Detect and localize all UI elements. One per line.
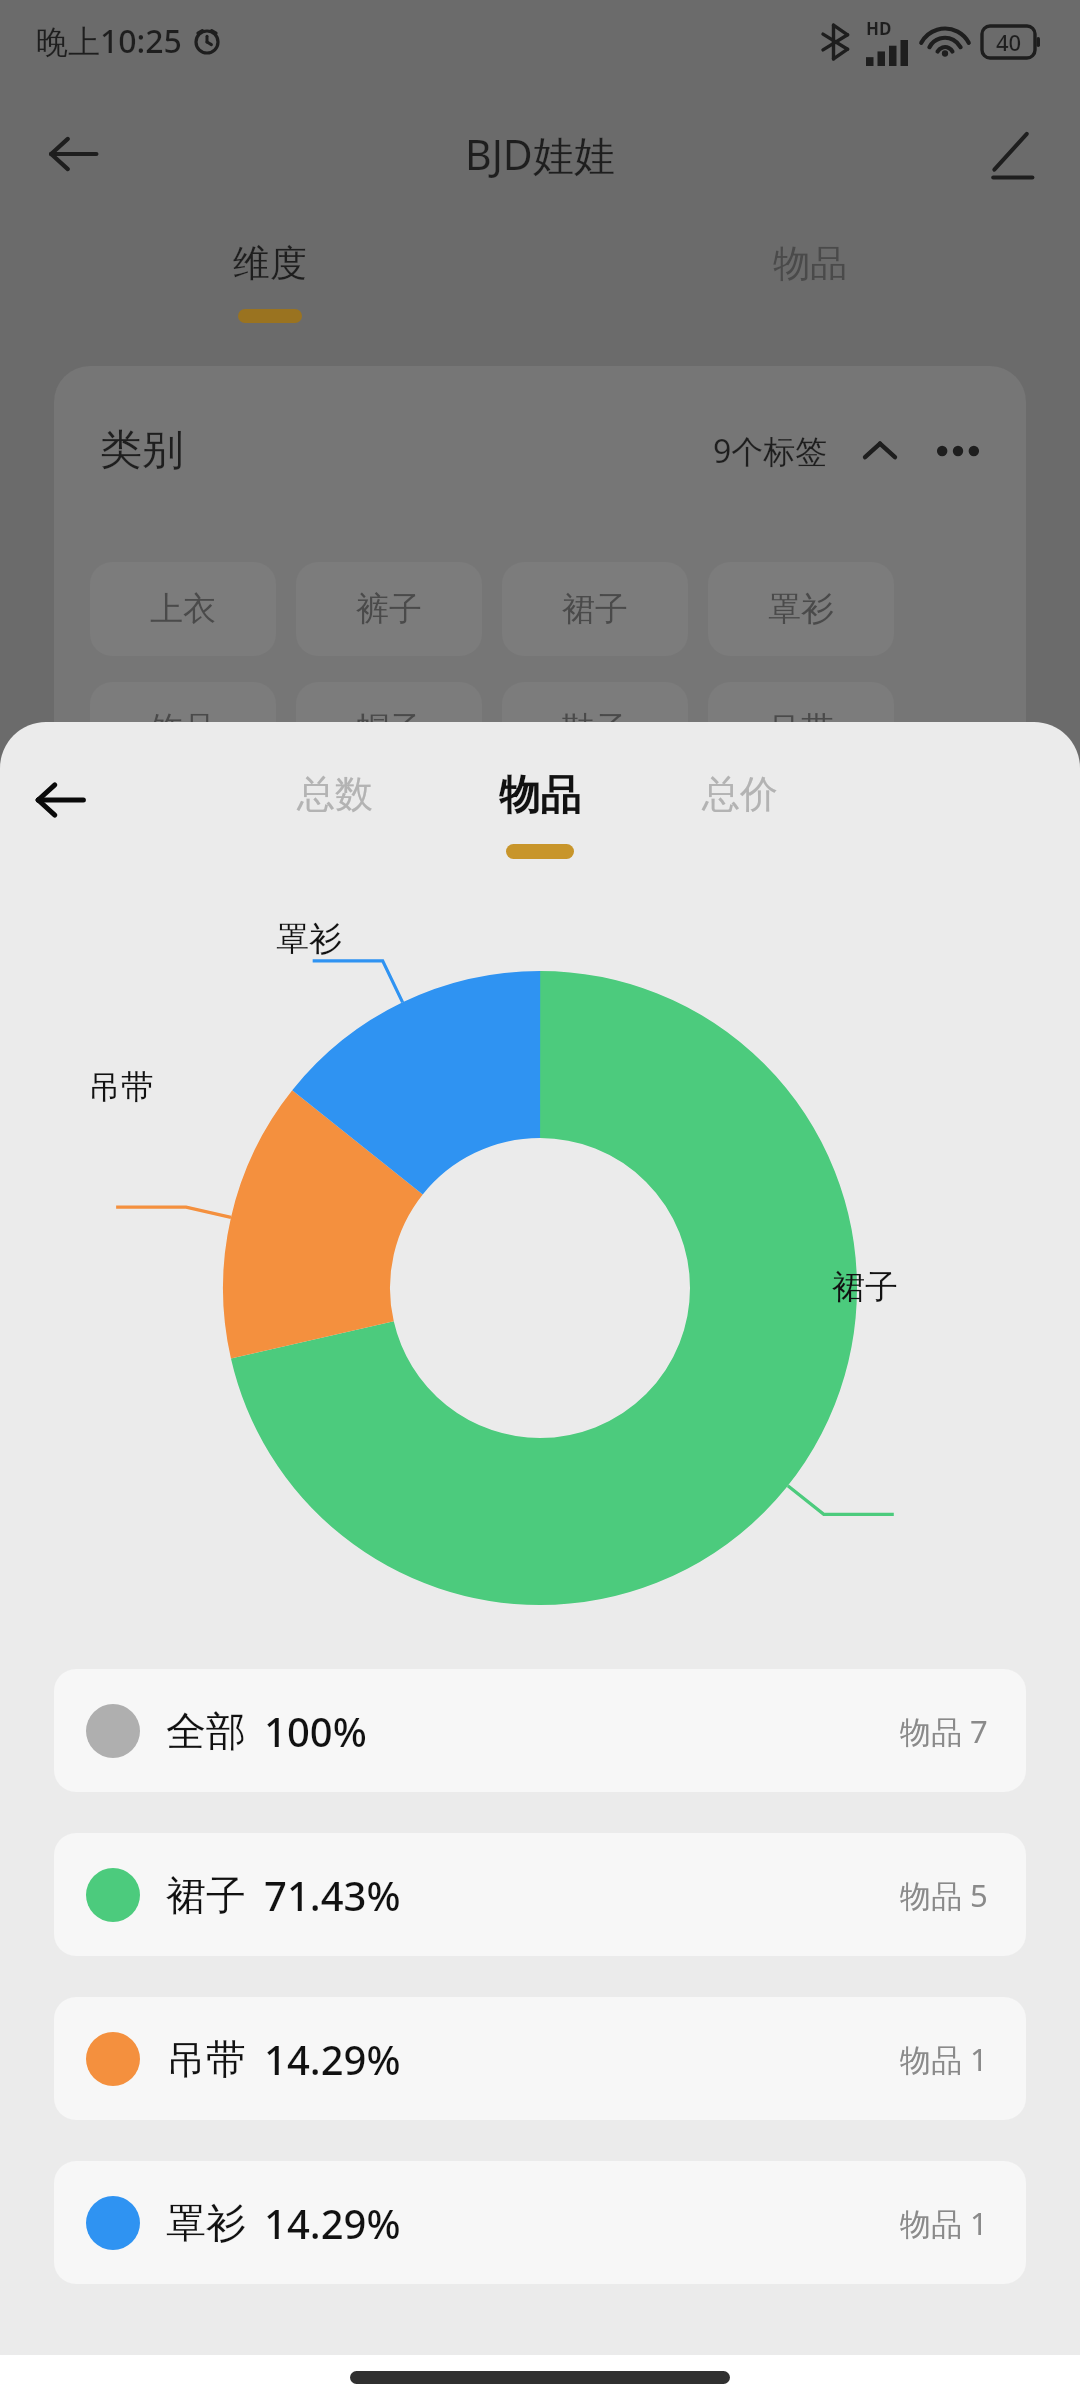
staticText: 吊带 (166, 2034, 246, 2084)
staticText: 鞋子 (562, 708, 628, 750)
staticText: 罩衫 (768, 588, 834, 630)
staticText: 总数 (297, 770, 373, 818)
button[interactable]: 总价 (665, 770, 815, 818)
staticText: 100% (264, 1704, 367, 1758)
button[interactable]: 裤子 (296, 562, 482, 656)
staticText: BJD娃娃 (465, 126, 615, 182)
staticText: 物品 7 (900, 1710, 988, 1752)
staticText: 物品 5 (900, 1874, 988, 1916)
staticText: 全部 (166, 1706, 246, 1756)
staticText: 上衣 (150, 588, 216, 630)
button[interactable]: 维度 (200, 240, 340, 323)
staticText: 帽子 (356, 708, 422, 750)
staticText: 40 (996, 27, 1022, 57)
staticText: 14.29% (264, 2032, 401, 2086)
staticText: 裙子 (832, 1266, 898, 1308)
staticText: 总价 (702, 770, 778, 818)
staticText: 14.29% (264, 2196, 401, 2250)
staticText: 类别 (100, 424, 184, 477)
staticText: HD (866, 17, 892, 40)
staticText: 饰品 (150, 708, 216, 750)
button[interactable]: 鞋子 (502, 682, 688, 776)
button[interactable]: 吊带 (54, 1997, 1026, 2120)
staticText: 吊带 (88, 1066, 154, 1108)
button[interactable]: 裙子 (502, 562, 688, 656)
button[interactable]: 物品 (740, 240, 880, 287)
staticText: 吊带 (768, 708, 834, 750)
staticText: 物品 1 (900, 2038, 988, 2080)
staticText: 罩衫 (276, 918, 342, 960)
staticText: 物品 (499, 770, 581, 822)
staticText: 晚上10:25 (36, 19, 182, 63)
button[interactable]: 返回 (22, 762, 98, 838)
staticText: 物品 (773, 240, 847, 287)
staticText: 物品 1 (900, 2202, 988, 2244)
staticText: 裙子 (166, 1870, 246, 1920)
button[interactable]: 罩衫 (54, 2161, 1026, 2284)
button[interactable]: 罩衫 (708, 562, 894, 656)
button[interactable]: 吊带 (708, 682, 894, 776)
staticText: 维度 (233, 240, 307, 287)
button[interactable]: 总数 (260, 770, 410, 818)
button[interactable]: 物品 (465, 770, 615, 859)
staticText: 裙子 (562, 588, 628, 630)
button[interactable]: 全部 (54, 1669, 1026, 1792)
button[interactable]: 返回 (34, 115, 112, 193)
button[interactable]: 帽子 (296, 682, 482, 776)
button[interactable]: 饰品 (90, 682, 276, 776)
staticText: 罩衫 (166, 2198, 246, 2248)
staticText: 裤子 (356, 588, 422, 630)
button[interactable]: 编辑 (974, 118, 1046, 190)
button[interactable]: 上衣 (90, 562, 276, 656)
staticText: 71.43% (264, 1868, 401, 1922)
staticText: 9个标签 (713, 429, 828, 473)
button[interactable]: 裙子 (54, 1833, 1026, 1956)
